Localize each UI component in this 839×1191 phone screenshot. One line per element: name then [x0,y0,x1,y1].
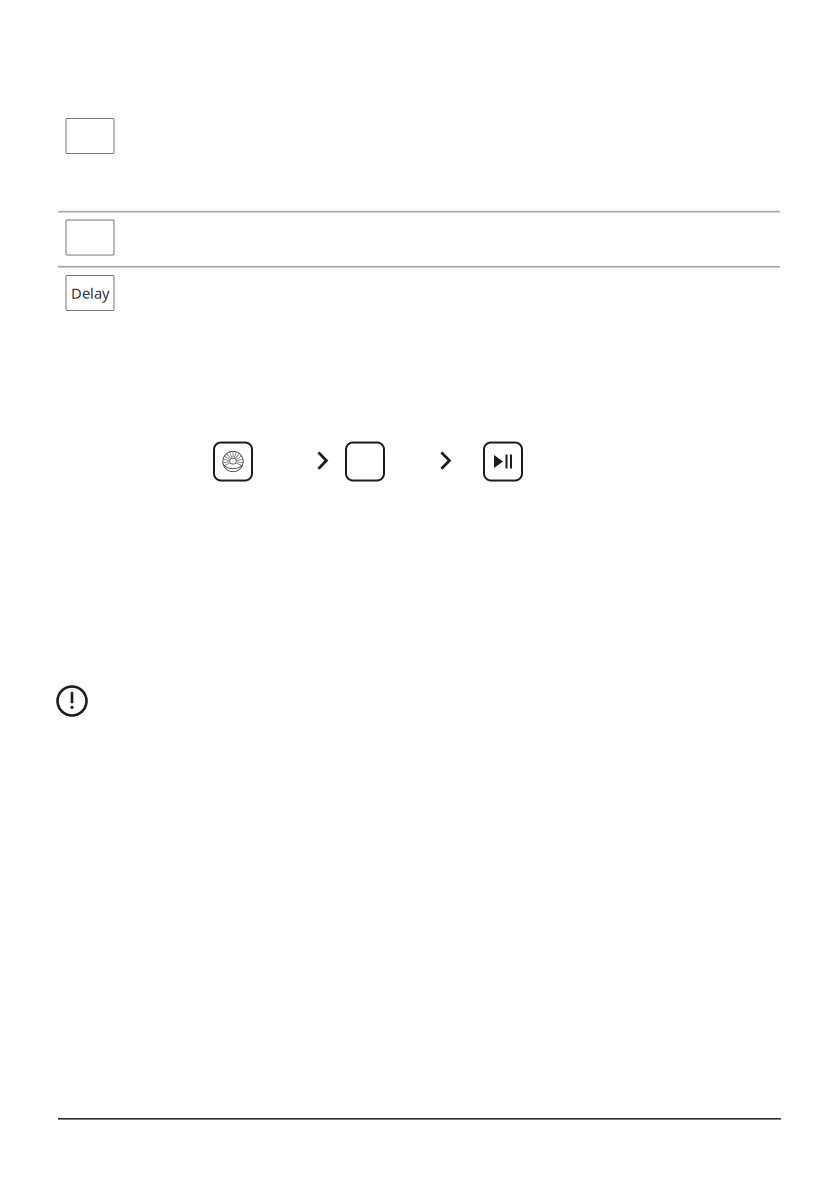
button[interactable]: Play or pause [484,442,522,480]
button[interactable]: Key [66,118,114,153]
button[interactable]: Key [66,220,114,255]
button[interactable]: Delay [66,275,114,310]
button[interactable]: Brightness [214,442,252,480]
button[interactable]: Option [346,442,384,480]
staticText: Delay [71,283,109,303]
